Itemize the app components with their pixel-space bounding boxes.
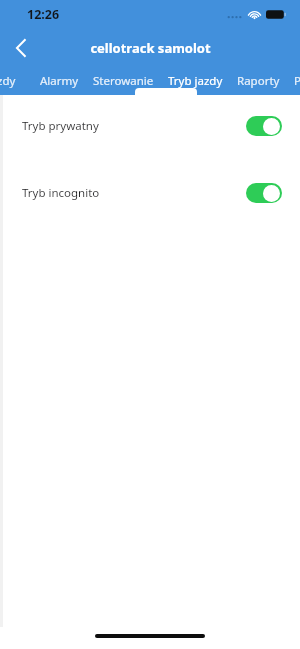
button[interactable]: Powiadomi xyxy=(287,68,300,95)
staticText: Tryb jazdy xyxy=(168,73,223,89)
button[interactable]: Tryb jazdy xyxy=(161,68,230,95)
button[interactable]: Alarmy xyxy=(33,68,86,95)
staticText: 12:26 xyxy=(27,6,60,23)
staticText: Tryb prywatny xyxy=(22,118,99,134)
button[interactable]: Tryb incognito toggle, on xyxy=(246,183,282,203)
staticText: cellotrack samolot xyxy=(90,39,211,57)
button[interactable]: Sterowanie xyxy=(86,68,161,95)
staticText: zdy xyxy=(0,73,16,89)
button[interactable]: Raporty xyxy=(230,68,287,95)
staticText: Raporty xyxy=(237,73,280,89)
staticText: Tryb incognito xyxy=(22,185,100,201)
button[interactable]: Back xyxy=(0,28,42,68)
staticText: Alarmy xyxy=(40,73,79,89)
staticText: Sterowanie xyxy=(93,73,154,89)
button[interactable]: Tryb prywatny xyxy=(0,109,300,143)
button[interactable]: zdy xyxy=(0,68,23,95)
button[interactable]: Tryb incognito xyxy=(0,176,300,210)
button[interactable]: Tryb prywatny toggle, on xyxy=(246,116,282,136)
